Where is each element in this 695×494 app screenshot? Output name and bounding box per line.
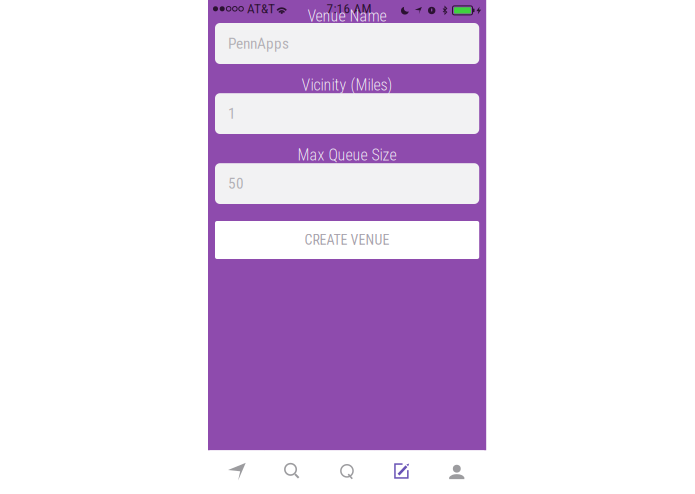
- button[interactable]: Nearby: [210, 450, 265, 494]
- staticText: AT&T: [247, 1, 275, 16]
- button[interactable]: CREATE VENUE: [215, 221, 479, 259]
- staticText: PennApps: [228, 34, 289, 52]
- staticText: 50: [228, 175, 244, 193]
- button[interactable]: Compose: [374, 450, 429, 494]
- staticText: Max Queue Size: [298, 146, 397, 164]
- staticText: Vicinity (Miles): [302, 76, 393, 94]
- button[interactable]: Profile: [429, 450, 484, 494]
- button[interactable]: Queue: [319, 450, 374, 494]
- button[interactable]: Search: [265, 450, 319, 494]
- staticText: 1: [228, 105, 236, 123]
- staticText: Venue Name: [308, 7, 387, 25]
- staticText: CREATE VENUE: [305, 232, 390, 248]
- staticText: 7:16 AM: [327, 1, 372, 16]
